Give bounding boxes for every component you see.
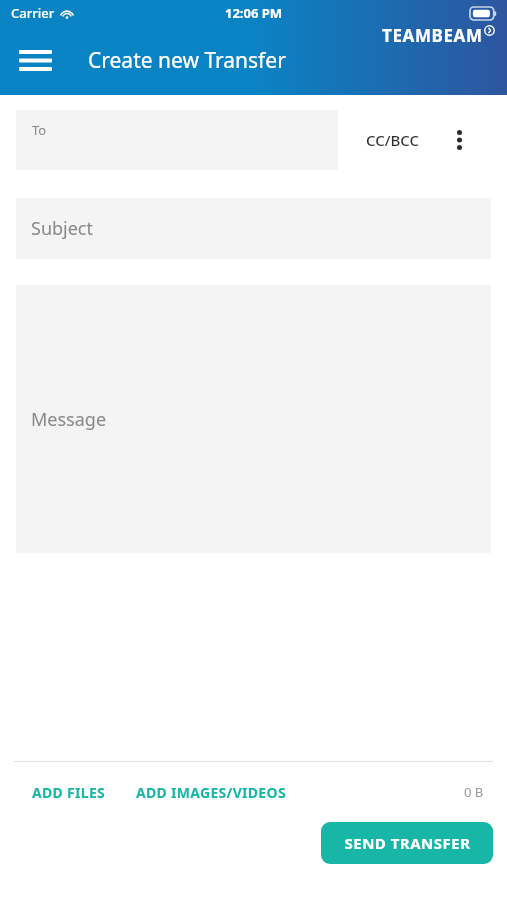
button[interactable]: Open navigation menu [6,38,64,82]
button[interactable]: To [16,110,338,170]
button[interactable]: More options [442,118,476,162]
staticText: Subject [31,216,94,241]
staticText: ADD FILES [32,783,106,802]
staticText: SEND TRANSFER [344,833,471,853]
staticText: TEAMBEAM [382,24,483,47]
staticText: To [32,121,47,139]
button[interactable]: Subject [16,198,491,259]
button[interactable]: ADD FILES [0,775,116,810]
button[interactable]: TEAMBEAM [380,22,497,49]
staticText: Carrier [11,4,55,22]
button[interactable]: SEND TRANSFER [321,822,493,864]
button[interactable]: CC/BCC [360,122,426,158]
staticText: 0 B [464,783,484,801]
button[interactable]: Message [16,285,491,553]
staticText: CC/BCC [366,130,420,150]
button[interactable]: ADD IMAGES/VIDEOS [130,775,292,810]
staticText: 12:06 PM [225,4,283,22]
staticText: ADD IMAGES/VIDEOS [136,783,286,802]
staticText: Message [31,407,107,432]
staticText: Create new Transfer [88,46,286,75]
